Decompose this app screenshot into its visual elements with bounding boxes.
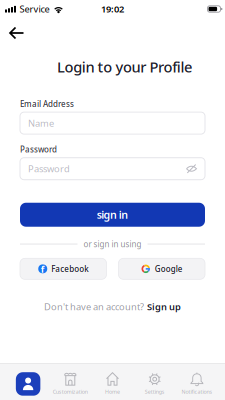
staticText: or sign in using xyxy=(83,239,141,249)
staticText: Settings xyxy=(145,388,165,395)
button[interactable]: f xyxy=(20,258,106,279)
staticText: sign in xyxy=(97,208,128,222)
button[interactable]: Home xyxy=(91,364,134,395)
button[interactable]: Settings xyxy=(134,364,176,395)
button[interactable]: Show password xyxy=(186,163,197,174)
staticText: f xyxy=(41,263,45,275)
button[interactable]: Profile xyxy=(7,364,49,396)
staticText: Facebook xyxy=(51,263,88,274)
button[interactable]: Google xyxy=(118,258,205,279)
staticText: Don't have an account? xyxy=(44,300,144,313)
staticText: Password xyxy=(28,162,70,175)
staticText: Customization xyxy=(53,388,88,395)
staticText: Google xyxy=(155,263,183,274)
staticText: Email Address xyxy=(20,98,74,109)
button[interactable]: Customization xyxy=(49,364,91,395)
staticText: 19:02 xyxy=(101,3,124,15)
button[interactable]: Sign up xyxy=(147,300,181,313)
staticText: Password xyxy=(20,144,57,155)
staticText: Sign up xyxy=(147,300,181,313)
button[interactable]: Notifications xyxy=(176,364,218,395)
staticText: Login to your Profile xyxy=(57,57,192,76)
button[interactable]: Back xyxy=(0,23,23,43)
button[interactable]: sign in xyxy=(20,203,205,227)
staticText: Service xyxy=(19,3,49,15)
staticText: Notifications xyxy=(181,388,212,395)
staticText: Home xyxy=(105,388,120,395)
staticText: Name xyxy=(28,117,54,129)
